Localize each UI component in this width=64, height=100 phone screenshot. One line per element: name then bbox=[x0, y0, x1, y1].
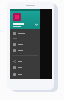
button[interactable]: Share bbox=[10, 58, 40, 64]
other: Share bbox=[13, 60, 16, 63]
button[interactable] bbox=[10, 41, 40, 47]
button[interactable] bbox=[10, 71, 40, 77]
button[interactable] bbox=[10, 30, 40, 36]
other: Switch account bbox=[35, 23, 38, 26]
button[interactable]: Switch account bbox=[10, 9, 40, 29]
button[interactable] bbox=[10, 47, 40, 53]
button[interactable] bbox=[10, 64, 40, 70]
